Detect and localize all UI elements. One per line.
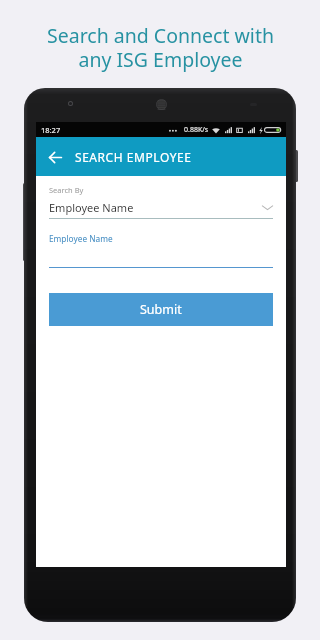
button[interactable]: Submit: [49, 293, 273, 326]
staticText: Search and Connect with any ISG Employee: [47, 22, 274, 73]
staticText: Submit: [140, 301, 182, 318]
staticText: 18:27: [41, 125, 61, 135]
button[interactable]: Search By: [49, 176, 273, 219]
staticText: Employee Name: [49, 233, 113, 244]
staticText: 0.88K/s: [184, 125, 209, 135]
button[interactable]: Back: [43, 145, 67, 169]
button[interactable]: Employee Name: [49, 219, 273, 268]
staticText: SEARCH EMPLOYEE: [75, 149, 192, 165]
staticText: Employee Name: [49, 200, 134, 215]
staticText: Search By: [49, 185, 84, 195]
